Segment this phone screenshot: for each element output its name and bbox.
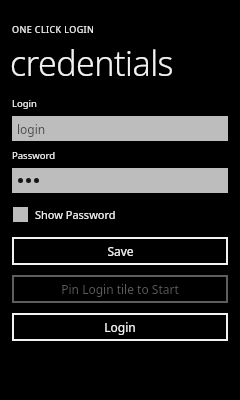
button[interactable]: login [12, 116, 228, 141]
staticText: Login [104, 319, 136, 335]
staticText: Save [107, 243, 134, 259]
staticText: Show Password [35, 207, 116, 222]
button[interactable]: Show Password checkbox [13, 207, 116, 222]
button[interactable]: Login [12, 313, 228, 341]
button[interactable] [12, 168, 228, 193]
staticText: ONE CLICK LOGIN [12, 23, 95, 35]
button[interactable]: Save [12, 237, 228, 265]
staticText: credentials [10, 40, 174, 86]
staticText: Pin Login tile to Start [61, 281, 179, 297]
staticText: Password [12, 149, 55, 162]
button[interactable]: Pin Login tile to Start [12, 275, 228, 303]
staticText: Login [12, 97, 37, 110]
staticText: login [17, 121, 46, 137]
